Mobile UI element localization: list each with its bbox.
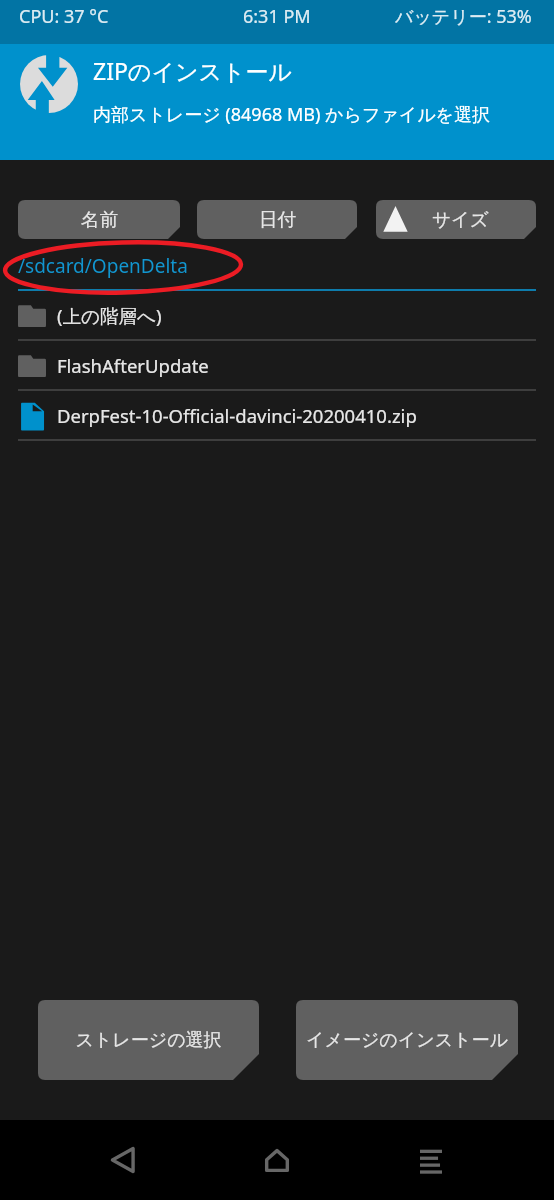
- button[interactable]: Recent apps: [401, 1120, 461, 1200]
- staticText: 名前: [81, 208, 118, 231]
- staticText: サイズ: [432, 208, 489, 231]
- staticText: (上の階層へ): [57, 303, 162, 328]
- staticText: 内部ストレージ (84968 MB) からファイルを選択: [93, 102, 490, 127]
- staticText: イメージのインストール: [306, 1029, 508, 1052]
- button[interactable]: FlashAfterUpdate: [0, 341, 554, 391]
- staticText: /sdcard/OpenDelta: [18, 253, 188, 279]
- staticText: ストレージの選択: [75, 1029, 222, 1052]
- button[interactable]: イメージのインストール: [296, 1000, 518, 1080]
- button[interactable]: Back: [93, 1120, 153, 1200]
- button[interactable]: (上の階層へ): [0, 291, 554, 341]
- button[interactable]: Home: [247, 1120, 307, 1200]
- button[interactable]: ストレージの選択: [38, 1000, 259, 1080]
- staticText: DerpFest-10-Official-davinci-20200410.zi…: [57, 403, 417, 428]
- staticText: FlashAfterUpdate: [57, 353, 209, 378]
- button[interactable]: 日付: [197, 200, 357, 239]
- button[interactable]: 名前: [18, 200, 180, 239]
- staticText: 6:31 PM: [243, 4, 311, 29]
- staticText: CPU: 37 °C: [19, 4, 109, 29]
- staticText: 日付: [259, 208, 296, 231]
- staticText: ZIPのインストール: [93, 55, 293, 86]
- staticText: バッテリー: 53%: [395, 4, 532, 29]
- button[interactable]: DerpFest-10-Official-davinci-20200410.zi…: [0, 391, 554, 441]
- button[interactable]: サイズ: [376, 200, 536, 239]
